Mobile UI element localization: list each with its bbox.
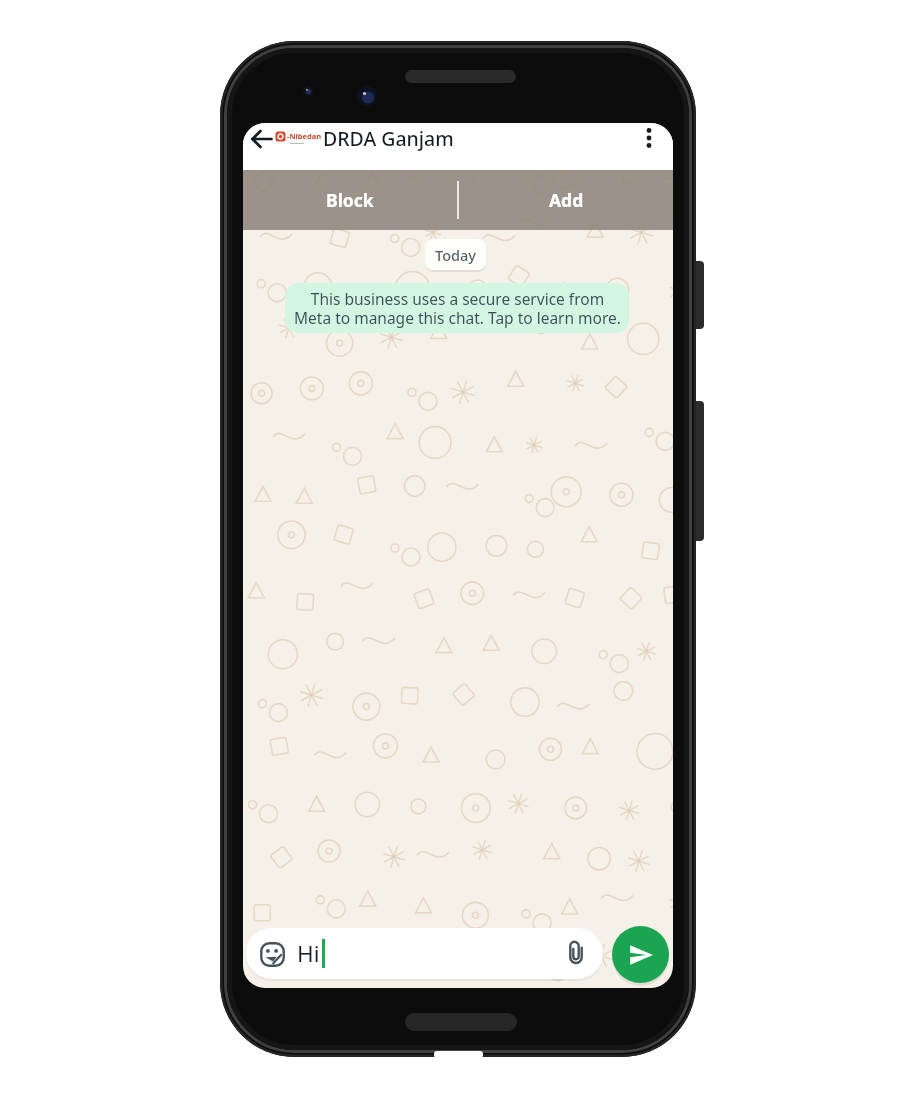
staticText: Hi [297,938,320,969]
staticText: Add [549,188,584,212]
button[interactable] [612,926,669,983]
staticText: DRDA Ganjam [323,125,454,152]
staticText: Block [326,188,374,212]
button[interactable]: Add [459,170,673,230]
button[interactable] [259,941,285,967]
button[interactable]: Block [243,170,457,230]
staticText: This business uses a secure service from… [294,288,621,328]
staticText: -Nibedan [287,131,322,141]
staticText: Today [435,245,476,265]
button[interactable] [248,125,275,152]
button[interactable] [561,939,591,969]
button[interactable] [635,124,663,152]
button[interactable]: Hi [246,928,603,979]
button[interactable]: -Nibedan [275,125,318,151]
button[interactable]: This business uses a secure service from… [285,283,629,333]
